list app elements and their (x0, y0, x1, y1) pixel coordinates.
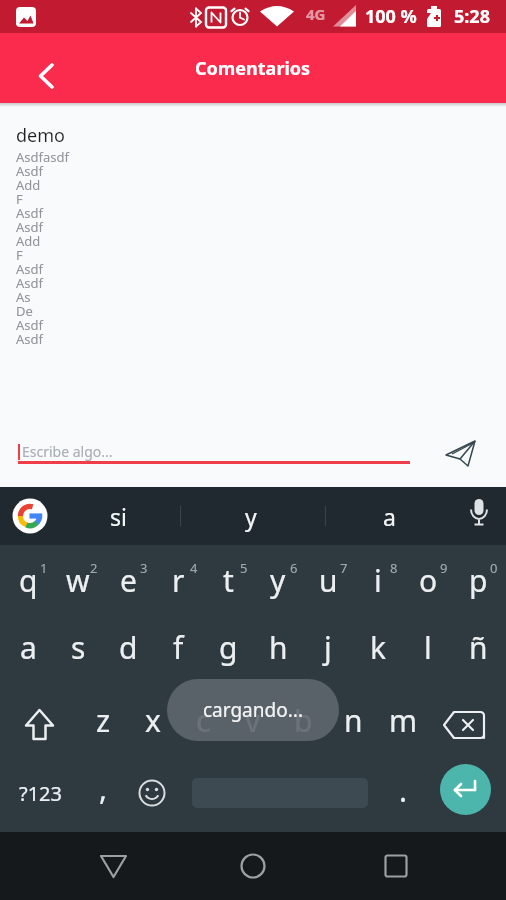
staticText: 6 (290, 559, 298, 577)
button[interactable]: 4 (185, 557, 203, 579)
button[interactable] (371, 841, 421, 891)
staticText: 5:28 (454, 4, 490, 29)
button[interactable]: c (178, 695, 228, 745)
button[interactable]: 5 (235, 557, 253, 579)
button[interactable]: a (3, 622, 53, 672)
button[interactable]: z (78, 695, 128, 745)
staticText: a (20, 627, 37, 668)
staticText: q (19, 560, 38, 601)
staticText: f (173, 627, 184, 668)
staticText: e (120, 560, 137, 601)
button[interactable]: 9 (435, 557, 453, 579)
button[interactable]: , (83, 763, 123, 813)
button[interactable]: t (203, 555, 253, 605)
button[interactable] (437, 701, 497, 755)
button[interactable]: b (278, 695, 328, 745)
staticText: ?123 (19, 780, 62, 807)
staticText: . (399, 770, 408, 811)
button[interactable] (0, 33, 70, 103)
button[interactable]: p (453, 555, 503, 605)
button[interactable]: 7 (335, 557, 353, 579)
staticText: c (196, 700, 211, 741)
button[interactable]: j (303, 622, 353, 672)
staticText: p (469, 560, 488, 601)
button[interactable] (126, 767, 178, 819)
button[interactable]: g (203, 622, 253, 672)
staticText: o (419, 560, 438, 601)
staticText: Asdfasdf Asdf Add F Asdf Asdf Add F Asdf… (16, 148, 69, 348)
button[interactable] (88, 841, 138, 891)
staticText: 100 % (365, 4, 417, 29)
staticText: cargando... (203, 697, 303, 723)
button[interactable]: o (403, 555, 453, 605)
staticText: Comentarios (195, 56, 311, 81)
staticText: y (245, 501, 257, 532)
button[interactable] (228, 841, 278, 891)
button[interactable]: a (330, 487, 448, 545)
staticText: 4 (190, 559, 198, 577)
staticText: 1 (40, 559, 48, 577)
staticText: si (110, 501, 127, 532)
button[interactable] (458, 487, 506, 545)
staticText: 5 (240, 559, 248, 577)
button[interactable]: h (253, 622, 303, 672)
staticText: i (374, 560, 382, 601)
button[interactable]: 0 (485, 557, 503, 579)
button[interactable]: 8 (385, 557, 403, 579)
staticText: u (319, 560, 338, 601)
staticText: 7 (340, 559, 348, 577)
staticText: r (172, 560, 185, 601)
staticText: 0 (490, 559, 498, 577)
staticText: g (219, 627, 238, 668)
staticText: h (269, 627, 288, 668)
button[interactable]: . (383, 765, 423, 815)
button[interactable]: i (353, 555, 403, 605)
staticText: n (344, 700, 363, 741)
button[interactable] (12, 702, 68, 756)
button[interactable] (440, 433, 482, 473)
staticText: 2 (90, 559, 98, 577)
button[interactable]: si (56, 487, 180, 545)
button[interactable]: q (3, 555, 53, 605)
button[interactable]: 1 (35, 557, 53, 579)
staticText: l (424, 627, 432, 668)
staticText: d (119, 627, 138, 668)
staticText: w (66, 560, 90, 601)
button[interactable]: x (128, 695, 178, 745)
button[interactable]: v (228, 695, 278, 745)
staticText: ñ (469, 627, 488, 668)
button[interactable]: m (378, 695, 428, 745)
button[interactable]: 3 (135, 557, 153, 579)
staticText: s (71, 627, 86, 668)
button[interactable]: 2 (85, 557, 103, 579)
staticText: v (245, 700, 261, 741)
button[interactable]: k (353, 622, 403, 672)
button[interactable]: r (153, 555, 203, 605)
staticText: 4G (306, 4, 326, 24)
button[interactable]: s (53, 622, 103, 672)
staticText: 8 (390, 559, 398, 577)
button[interactable]: y (186, 487, 316, 545)
button[interactable]: u (303, 555, 353, 605)
staticText: b (294, 700, 313, 741)
button[interactable]: e (103, 555, 153, 605)
button[interactable] (440, 764, 491, 815)
button[interactable]: n (328, 695, 378, 745)
button[interactable] (0, 487, 58, 545)
button[interactable]: ñ (453, 622, 503, 672)
button[interactable]: d (103, 622, 153, 672)
button[interactable]: y (253, 555, 303, 605)
button[interactable]: ?123 (10, 768, 70, 818)
button[interactable]: 6 (285, 557, 303, 579)
button[interactable]: l (403, 622, 453, 672)
staticText: j (324, 627, 332, 668)
staticText: y (270, 560, 286, 601)
staticText: x (145, 700, 161, 741)
button[interactable]: w (53, 555, 103, 605)
button[interactable]: Escribe algo... (22, 442, 113, 461)
staticText: , (99, 768, 108, 809)
button[interactable]: f (153, 622, 203, 672)
staticText: a (383, 501, 396, 532)
staticText: m (389, 700, 418, 741)
